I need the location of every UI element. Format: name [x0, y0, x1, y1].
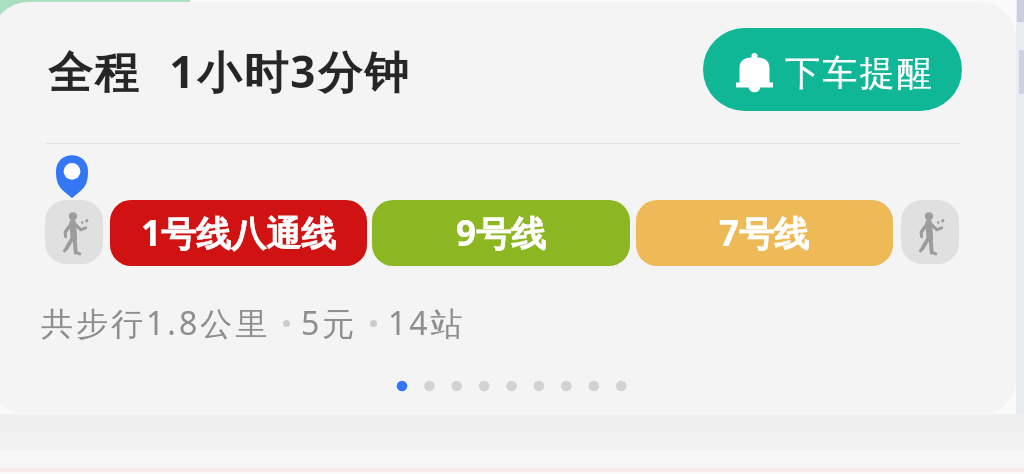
staticText: 7号线: [719, 209, 810, 257]
button[interactable]: 9号线: [372, 200, 630, 266]
button[interactable]: 1号线八通线: [110, 200, 367, 266]
button[interactable]: 全程 1小时3分钟: [0, 2, 1016, 415]
staticText: 下车提醒: [785, 51, 935, 95]
button[interactable]: 7号线: [636, 200, 893, 266]
staticText: 1号线八通线: [141, 209, 337, 257]
button[interactable]: Walk: [45, 200, 103, 264]
staticText: 共步行1.8公里: [41, 301, 271, 345]
other: Start location: [56, 155, 88, 198]
button[interactable]: 下车提醒: [703, 28, 962, 111]
button[interactable]: Walk: [901, 200, 959, 264]
staticText: 14站: [388, 301, 466, 345]
staticText: 5元: [301, 301, 358, 345]
staticText: 全程 1小时3分钟: [48, 41, 412, 101]
staticText: 9号线: [456, 209, 547, 257]
